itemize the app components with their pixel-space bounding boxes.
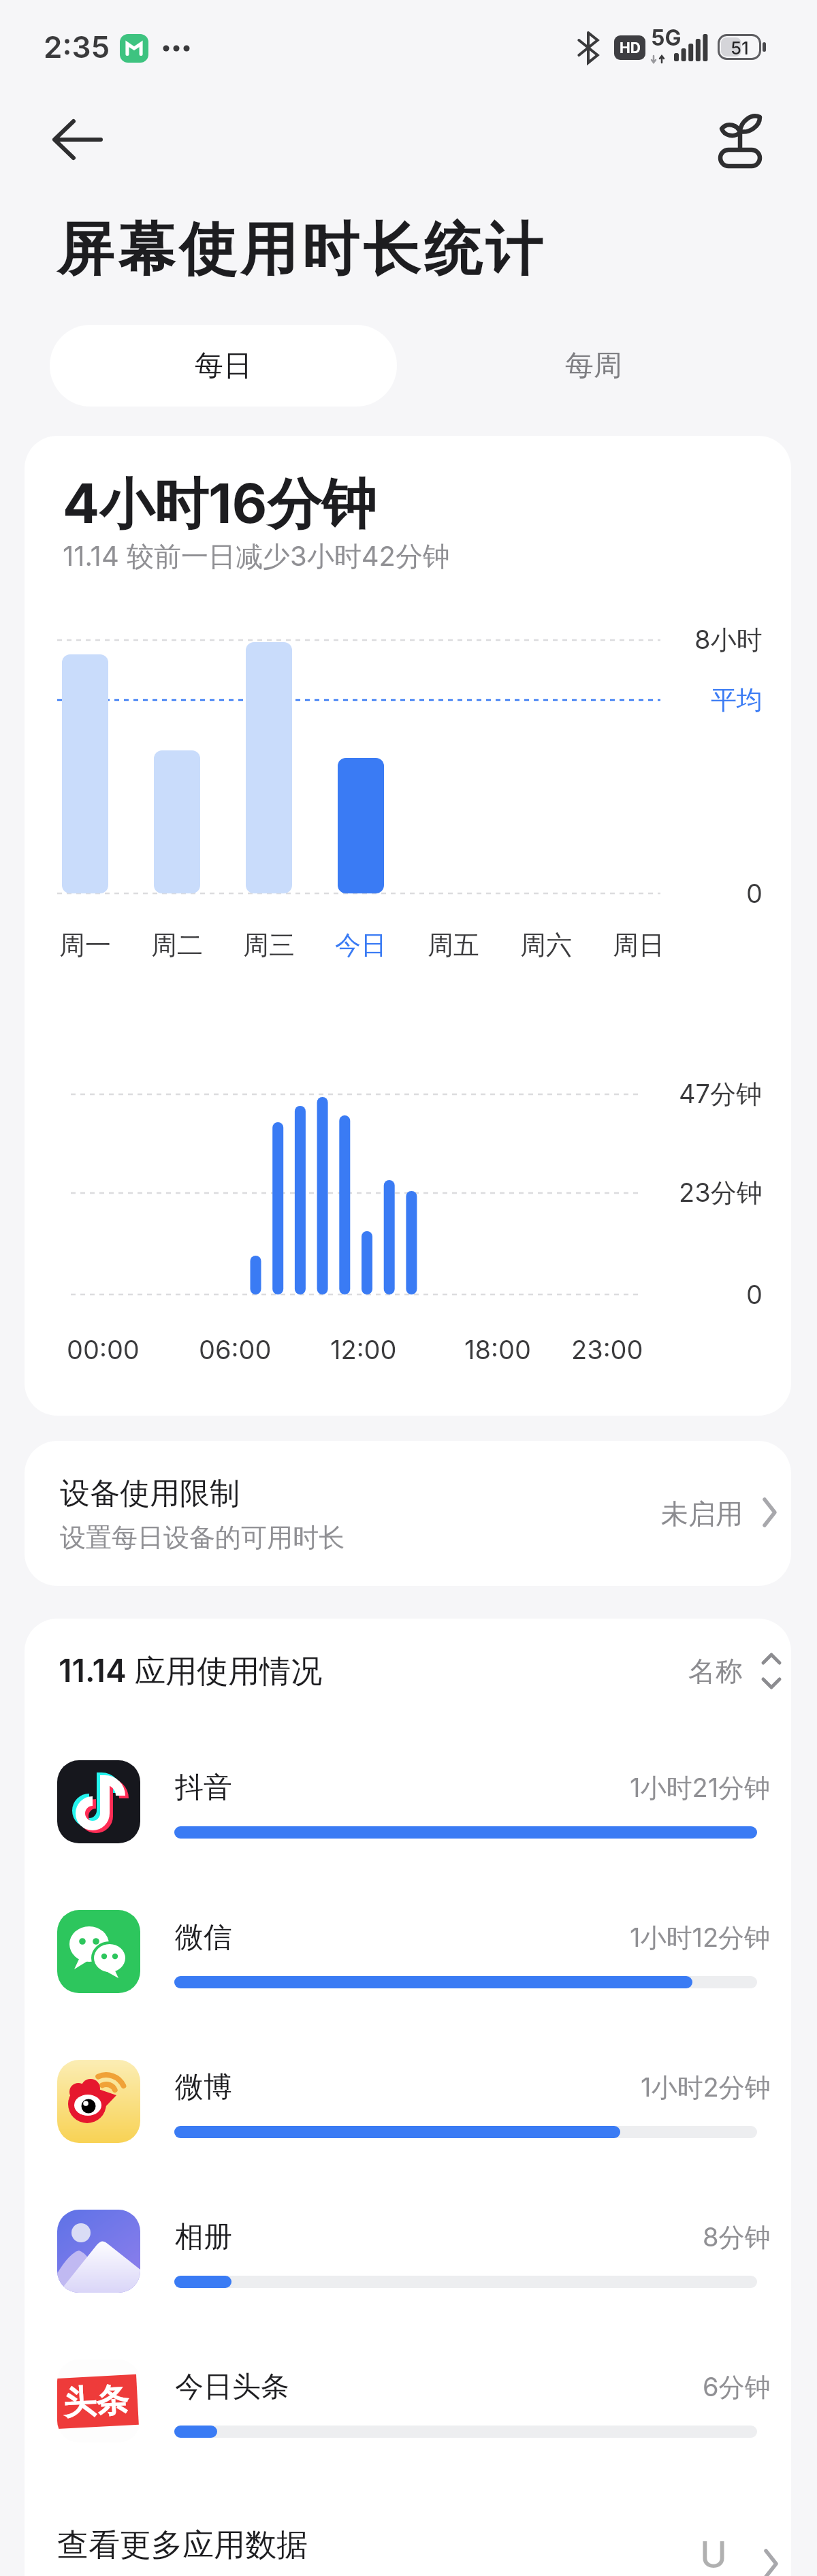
staticText: HD <box>620 39 641 57</box>
staticText: 周三 <box>243 929 295 961</box>
staticText: 47分钟 <box>679 1078 763 1111</box>
staticText: 今日头条 <box>175 2369 289 2405</box>
staticText: 11.14 应用使用情况 <box>59 1651 323 1691</box>
button[interactable]: 微信 <box>25 1910 791 2019</box>
button[interactable] <box>25 2511 791 2576</box>
staticText: 相册 <box>175 2219 232 2255</box>
staticText: 00:00 <box>67 1334 140 1365</box>
staticText: 23分钟 <box>679 1177 763 1209</box>
staticText: 屏幕使用时长统计 <box>54 214 545 286</box>
staticText: 每日 <box>195 348 252 384</box>
staticText: 今日 <box>335 929 387 961</box>
button[interactable] <box>41 108 116 173</box>
staticText: 周五 <box>428 929 479 961</box>
button[interactable]: 相册 <box>25 2210 791 2319</box>
staticText: 0 <box>746 878 763 909</box>
staticText: 1小时12分钟 <box>630 1922 771 1954</box>
button[interactable]: 设备使用限制 <box>25 1441 791 1586</box>
staticText: 周一 <box>59 929 111 961</box>
staticText: 设备使用限制 <box>60 1475 240 1512</box>
staticText: U <box>700 2532 727 2576</box>
staticText: 06:00 <box>199 1334 272 1365</box>
button[interactable]: 抖音 <box>25 1760 791 1869</box>
button[interactable] <box>658 1643 791 1698</box>
staticText: 头条 <box>62 2380 130 2424</box>
button[interactable] <box>704 104 775 174</box>
staticText: 查看更多应用数据 <box>57 2526 308 2565</box>
staticText: 微信 <box>175 1920 232 1956</box>
staticText: 1小时2分钟 <box>641 2071 771 2104</box>
staticText: 周二 <box>151 929 203 961</box>
staticText: 23:00 <box>571 1334 643 1365</box>
button[interactable]: 头条 <box>25 2359 791 2468</box>
staticText: 周六 <box>520 929 572 961</box>
staticText: 18:00 <box>464 1334 531 1365</box>
staticText: 4小时16分钟 <box>63 470 377 539</box>
staticText: 0 <box>746 1279 763 1310</box>
staticText: 51 <box>731 37 749 57</box>
staticText: 12:00 <box>330 1334 397 1365</box>
staticText: 抖音 <box>175 1770 232 1806</box>
staticText: 平均 <box>711 684 763 716</box>
staticText: 名称 <box>688 1654 743 1688</box>
staticText: 微博 <box>175 2069 232 2105</box>
staticText: 11.14 较前一日减少3小时42分钟 <box>63 539 450 574</box>
staticText: 2:35 <box>44 29 110 65</box>
staticText: 设置每日设备的可用时长 <box>60 1521 345 1554</box>
staticText: 8分钟 <box>703 2221 771 2254</box>
button[interactable]: 每日 <box>50 325 397 407</box>
staticText: 8小时 <box>694 624 763 656</box>
button[interactable]: 微博 <box>25 2060 791 2169</box>
staticText: 1小时21分钟 <box>630 1772 771 1804</box>
staticText: 周日 <box>613 929 664 961</box>
staticText: 6分钟 <box>703 2371 771 2404</box>
staticText: 未启用 <box>661 1497 743 1531</box>
staticText: 5G <box>651 25 682 51</box>
button[interactable]: 每周 <box>488 325 699 407</box>
staticText: 每周 <box>565 348 622 384</box>
